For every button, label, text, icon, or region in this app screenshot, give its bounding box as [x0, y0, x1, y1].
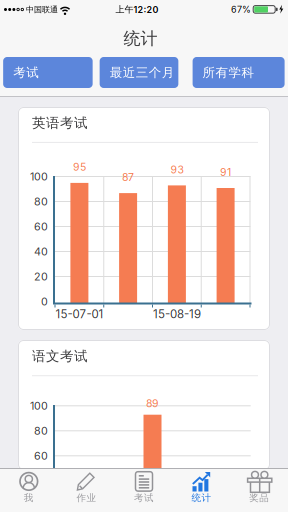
staticText: 40 — [34, 245, 48, 258]
staticText: 考试 — [13, 65, 39, 80]
staticText: 15-07-01 — [55, 307, 103, 321]
staticText: 20 — [34, 270, 48, 283]
staticText: 考试 — [134, 492, 154, 504]
staticText: 95 — [73, 161, 86, 173]
button[interactable]: 所有学科 — [193, 57, 285, 88]
staticText: 英语考试 — [32, 114, 88, 131]
staticText: 60 — [34, 220, 48, 233]
staticText: 中国联通 — [26, 4, 58, 15]
staticText: 我 — [24, 492, 34, 504]
button[interactable]: 作业 — [58, 469, 115, 512]
button[interactable]: 考试 — [115, 469, 173, 512]
staticText: 所有学科 — [203, 65, 255, 80]
staticText: 统计 — [192, 492, 212, 504]
staticText: 89 — [146, 397, 159, 410]
staticText: 语文考试 — [32, 348, 88, 365]
staticText: 100 — [30, 399, 48, 412]
staticText: 100 — [30, 170, 48, 183]
staticText: 作业 — [76, 492, 96, 504]
staticText: 80 — [34, 424, 48, 437]
staticText: 0 — [41, 295, 48, 308]
staticText: 91 — [220, 166, 231, 178]
staticText: 奖品 — [249, 492, 269, 504]
button[interactable]: 考试 — [3, 57, 93, 88]
staticText: 上午12:20 — [115, 4, 158, 15]
button[interactable]: 统计 — [173, 469, 230, 512]
staticText: 93 — [170, 163, 183, 176]
staticText: 统计 — [123, 28, 157, 49]
staticText: 15-08-19 — [153, 307, 201, 321]
button[interactable]: 最近三个月 — [100, 57, 178, 88]
staticText: 80 — [34, 195, 48, 208]
staticText: 67% — [231, 4, 251, 15]
staticText: 最近三个月 — [110, 65, 175, 80]
staticText: 87 — [122, 171, 134, 184]
staticText: 60 — [34, 449, 48, 462]
button[interactable]: 奖品 — [230, 469, 288, 512]
button[interactable]: 我 — [0, 469, 58, 512]
